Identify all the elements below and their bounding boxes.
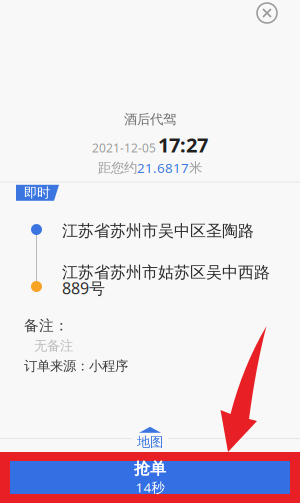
staticText: 17:27 <box>158 131 208 158</box>
button[interactable]: 地图 <box>132 427 168 450</box>
staticText: 订单来源：小程序 <box>24 358 128 374</box>
staticText: 2021-12-05 <box>92 140 156 156</box>
staticText: 米 <box>189 160 202 176</box>
staticText: 江苏省苏州市吴中区圣陶路 <box>62 221 254 241</box>
staticText: 21.6817 <box>137 159 189 177</box>
staticText: 江苏省苏州市姑苏区吴中西路889号 <box>62 263 270 299</box>
staticText: 距您约 <box>98 160 137 176</box>
staticText: 备注： <box>24 317 69 335</box>
staticText: 14秒 <box>135 478 164 496</box>
staticText: 无备注 <box>34 338 73 354</box>
staticText: 抢单 <box>134 459 166 478</box>
staticText: 即时 <box>24 185 50 201</box>
staticText: 酒后代驾 <box>124 111 176 127</box>
button[interactable]: Close <box>252 0 282 26</box>
button[interactable]: 抢单 <box>10 461 290 494</box>
staticText: 地图 <box>137 434 163 450</box>
